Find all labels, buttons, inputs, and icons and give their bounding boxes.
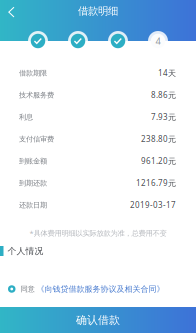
- staticText: 支付信审费: [19, 134, 54, 144]
- staticText: 238.80元: [141, 134, 176, 144]
- staticText: 技术服务费: [19, 90, 54, 100]
- staticText: 还款日期: [19, 200, 47, 210]
- staticText: 2019-03-17: [130, 200, 176, 210]
- staticText: 8.86元: [151, 90, 176, 100]
- staticText: 借款明细: [78, 4, 118, 17]
- staticText: 1216.79元: [136, 178, 176, 188]
- staticText: 借款期限: [19, 68, 47, 78]
- staticText: 同意: [20, 284, 34, 294]
- staticText: 到账金额: [19, 156, 47, 166]
- staticText: 确认借款: [76, 313, 120, 327]
- button[interactable]: Back: [0, 0, 21, 21]
- button[interactable]: 确认借款: [0, 307, 196, 333]
- staticText: 个人情况: [7, 245, 43, 257]
- staticText: 利息: [19, 112, 33, 122]
- staticText: 7.93元: [151, 112, 176, 122]
- staticText: 《向钱贷借款服务协议及相关合同》: [36, 284, 164, 294]
- staticText: 961.20元: [141, 156, 176, 166]
- button[interactable]: 同意: [0, 281, 196, 297]
- staticText: *具体费用明细以实际放款为准，总费用不变: [29, 228, 166, 238]
- staticText: 到期还款: [19, 178, 47, 188]
- staticText: 4: [155, 35, 160, 47]
- staticText: 14天: [158, 68, 176, 78]
